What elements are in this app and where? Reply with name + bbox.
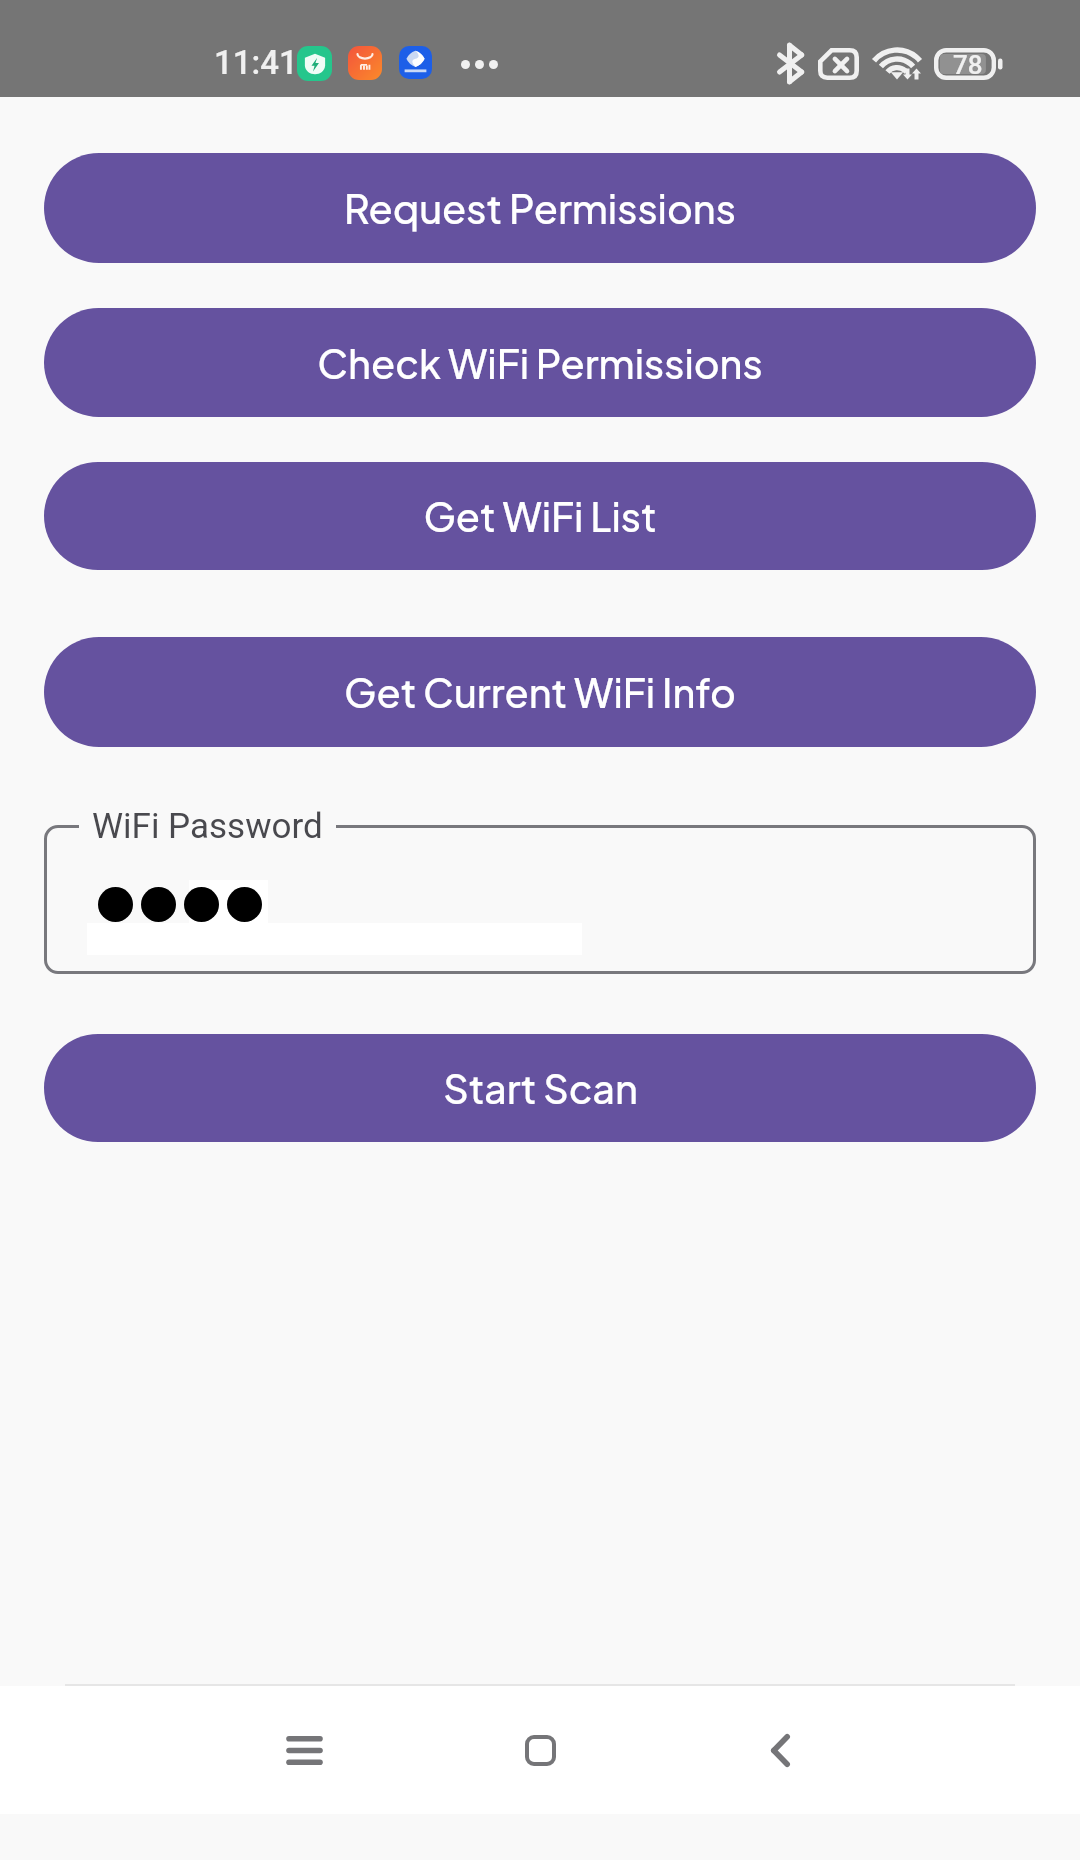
button[interactable]: Home <box>490 1700 590 1800</box>
button[interactable]: WiFi Password <box>44 825 1036 974</box>
button[interactable]: Back <box>730 1700 830 1800</box>
staticText: Check WiFi Permissions <box>317 338 763 388</box>
staticText: Request Permissions <box>344 183 736 233</box>
button[interactable]: Start Scan <box>44 1034 1036 1142</box>
button[interactable]: Get Current WiFi Info <box>44 637 1036 747</box>
button[interactable]: Request Permissions <box>44 153 1036 263</box>
button[interactable]: Check WiFi Permissions <box>44 308 1036 417</box>
button[interactable]: Get WiFi List <box>44 462 1036 570</box>
staticText: 11:41 <box>214 43 298 82</box>
staticText: Get WiFi List <box>423 491 657 541</box>
staticText: Start Scan <box>443 1063 638 1113</box>
staticText: 78 <box>953 50 983 80</box>
staticText: Get Current WiFi Info <box>344 667 736 717</box>
staticText: WiFi Password <box>92 806 323 847</box>
button[interactable]: Recent apps <box>254 1700 354 1800</box>
